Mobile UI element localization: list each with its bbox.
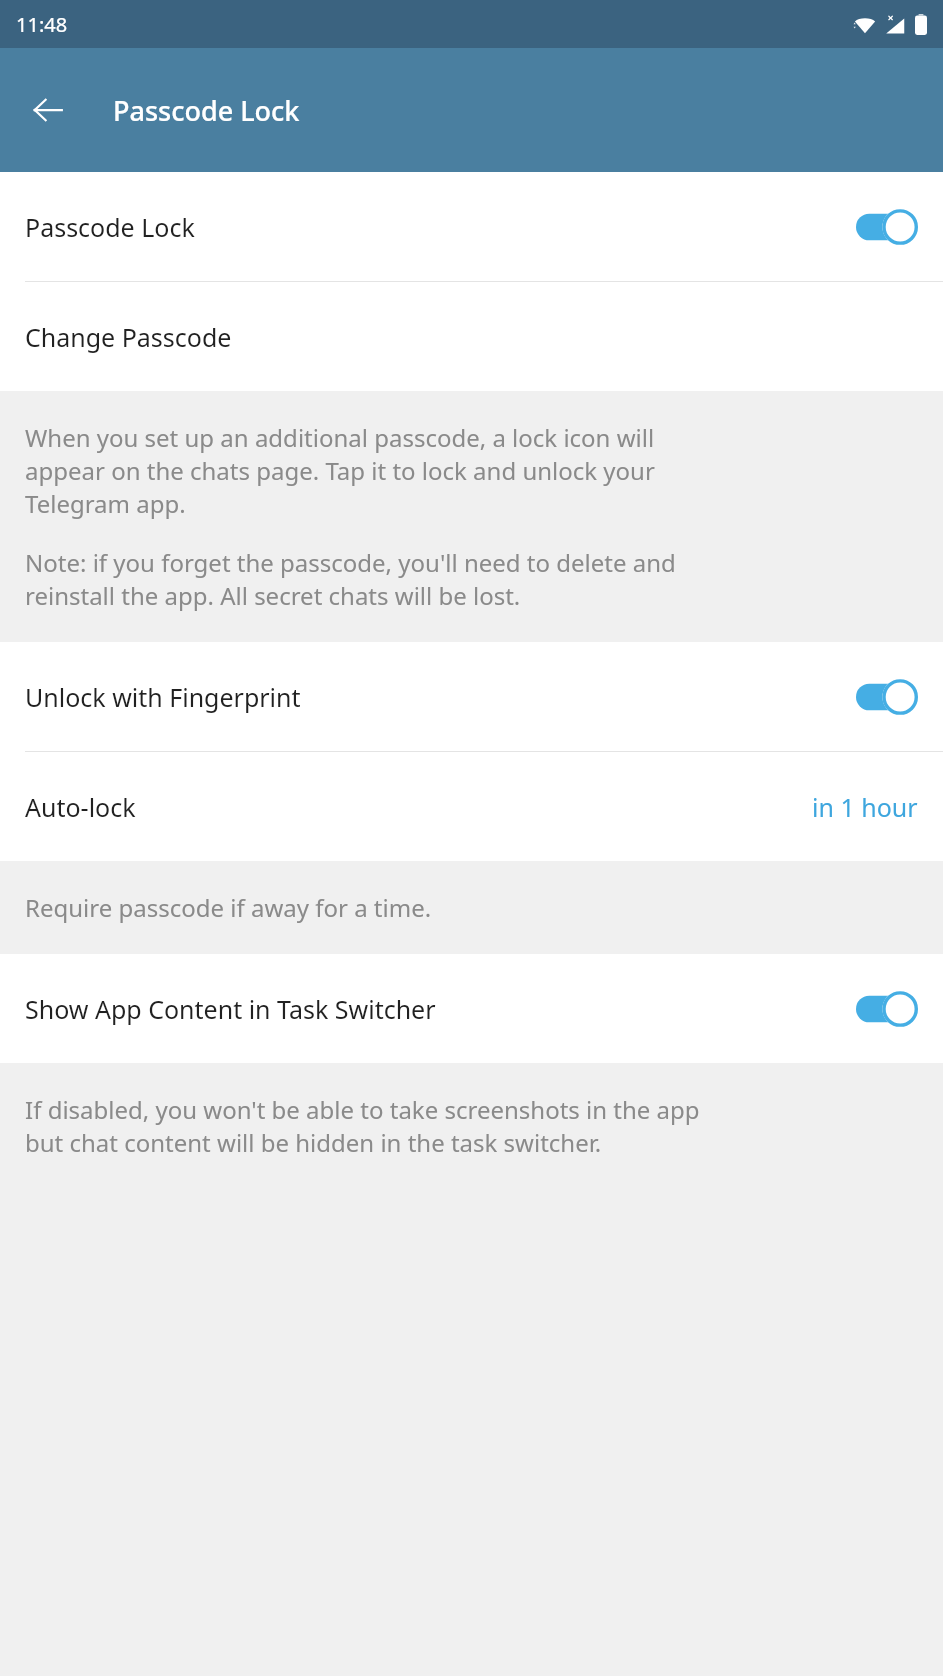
staticText: Show App Content in Task Switcher <box>25 992 856 1026</box>
staticText: appear on the chats page. Tap it to lock… <box>25 454 655 487</box>
staticText: Passcode Lock <box>113 92 300 129</box>
staticText: Note: if you forget the passcode, you'll… <box>25 546 676 579</box>
staticText: When you set up an additional passcode, … <box>25 421 655 454</box>
button[interactable]: Change Passcode <box>0 282 943 391</box>
staticText: Require passcode if away for a time. <box>25 891 432 924</box>
staticText: 11:48 <box>16 11 68 38</box>
staticText: Change Passcode <box>25 320 232 354</box>
button[interactable]: Show App Content in Task Switcher <box>0 954 943 1063</box>
staticText: If disabled, you won't be able to take s… <box>25 1093 700 1126</box>
button[interactable]: Auto-lock <box>0 752 943 861</box>
staticText: Unlock with Fingerprint <box>25 680 856 714</box>
staticText: Telegram app. <box>25 487 186 520</box>
staticText: Auto-lock <box>25 790 812 824</box>
staticText: Passcode Lock <box>25 210 856 244</box>
staticText: in 1 hour <box>812 790 918 824</box>
staticText: reinstall the app. All secret chats will… <box>25 579 521 612</box>
button[interactable]: Unlock with Fingerprint <box>0 642 943 751</box>
staticText: but chat content will be hidden in the t… <box>25 1126 602 1159</box>
button[interactable]: Passcode Lock <box>0 172 943 281</box>
button[interactable]: Back <box>20 82 76 138</box>
